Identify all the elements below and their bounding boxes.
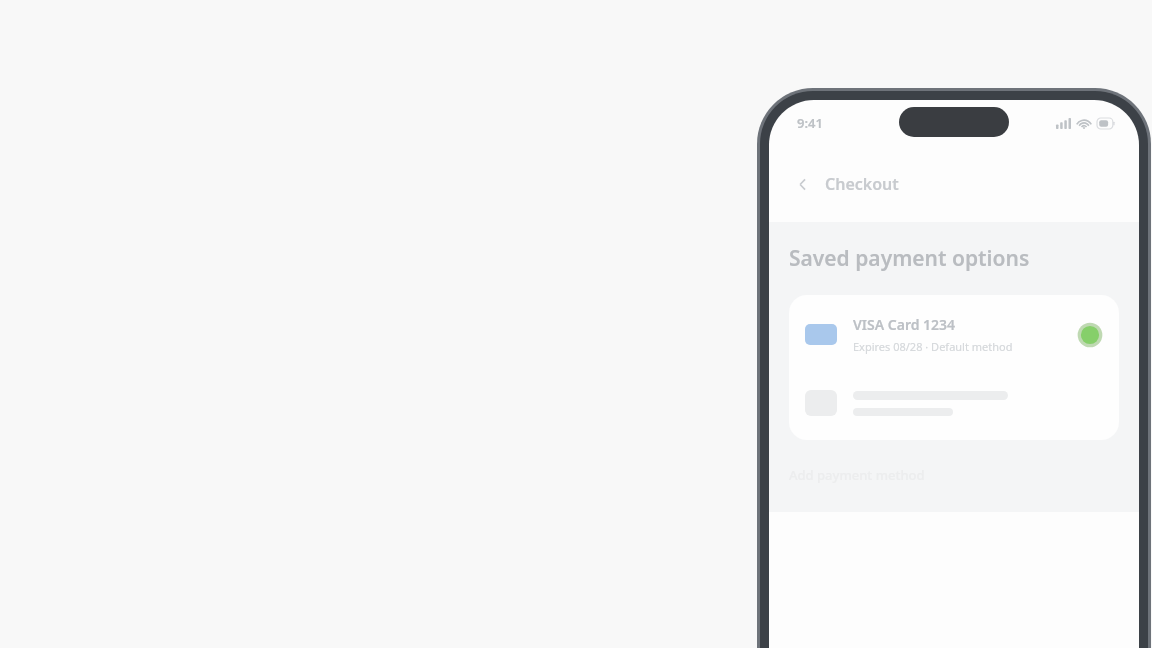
- staticText: VISA Card 1234: [853, 315, 956, 334]
- staticText: Checkout: [825, 173, 899, 195]
- button[interactable]: VISA Card 1234: [789, 301, 1119, 368]
- staticText: Saved payment options: [789, 244, 1030, 273]
- button[interactable]: Selected: [1077, 322, 1103, 348]
- button[interactable]: [789, 378, 1119, 428]
- staticText: Expires 08/28 · Default method: [853, 339, 1013, 354]
- staticText: 9:41: [797, 114, 823, 132]
- button[interactable]: Back: [789, 170, 817, 198]
